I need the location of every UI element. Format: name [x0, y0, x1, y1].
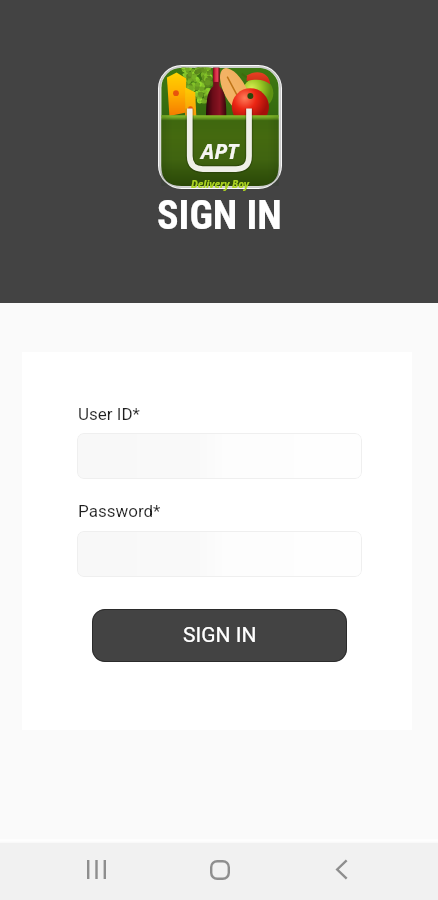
button[interactable]: Recent apps: [67, 841, 126, 898]
staticText: SIGN IN: [157, 192, 282, 239]
staticText: SIGN IN: [183, 623, 257, 648]
button[interactable]: [77, 531, 362, 577]
button[interactable]: Home: [190, 841, 249, 898]
staticText: APT: [201, 137, 239, 166]
button[interactable]: Back: [312, 841, 371, 898]
button[interactable]: SIGN IN: [92, 609, 347, 662]
staticText: User ID*: [78, 404, 140, 424]
staticText: Password*: [78, 501, 161, 521]
button[interactable]: [77, 433, 362, 479]
staticText: Delivery Boy: [191, 177, 250, 191]
